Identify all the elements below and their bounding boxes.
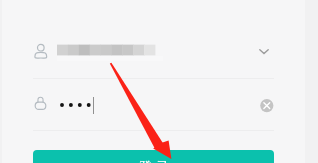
button[interactable]: Expand account list xyxy=(254,42,274,62)
button[interactable]: Clear password xyxy=(0,79,318,131)
button[interactable]: Expand account list xyxy=(0,0,318,79)
staticText: 登 录 xyxy=(138,157,170,163)
button[interactable]: Clear password xyxy=(260,99,274,113)
button[interactable]: 登 录 xyxy=(33,150,274,163)
